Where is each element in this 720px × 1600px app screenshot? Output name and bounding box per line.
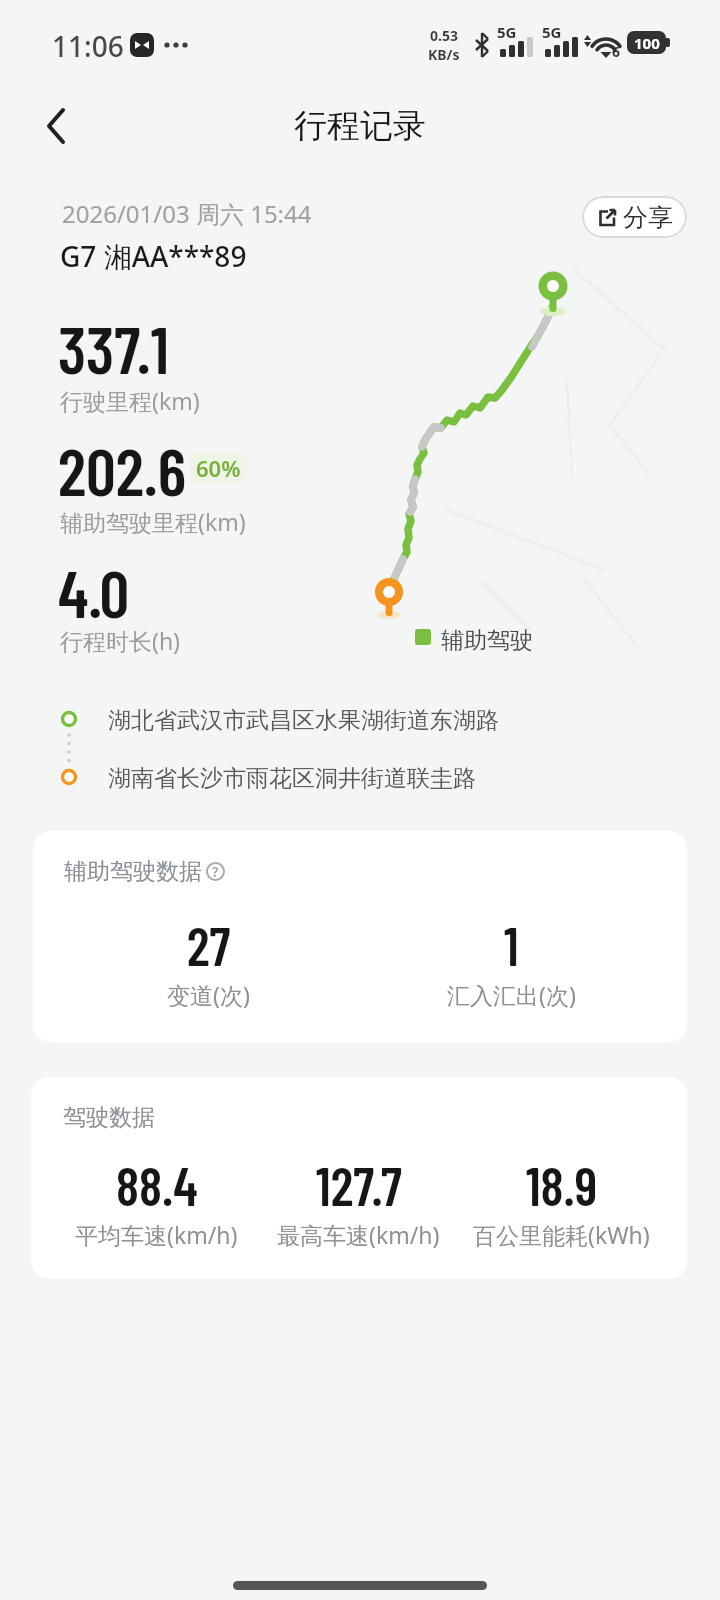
staticText: 行程时长(h) (60, 625, 181, 656)
staticText: 最高车速(km/h) (277, 1219, 440, 1250)
staticText: 辅助驾驶里程(km) (60, 506, 246, 537)
staticText: 行驶里程(km) (60, 385, 200, 416)
staticText: 6 (612, 42, 621, 61)
staticText: 60% (196, 453, 241, 483)
staticText: 百公里能耗(kWh) (473, 1219, 650, 1250)
staticText: 4.0 (58, 552, 130, 631)
staticText: 平均车速(km/h) (75, 1219, 238, 1250)
staticText: 127.7 (316, 1153, 402, 1217)
staticText: 2026/01/03 周六 15:44 (62, 197, 312, 230)
staticText: 88.4 (116, 1153, 198, 1217)
staticText: 变道(次) (167, 979, 250, 1010)
staticText: 5G (497, 22, 517, 42)
staticText: 18.9 (526, 1153, 598, 1217)
button[interactable]: 分享 (582, 196, 687, 238)
staticText: 0.53 (430, 26, 458, 45)
staticText: 337.1 (58, 308, 169, 387)
staticText: ? (212, 862, 219, 881)
button[interactable] (38, 106, 78, 146)
staticText: 11:06 (52, 27, 124, 65)
staticText: KB/s (428, 45, 460, 64)
staticText: 汇入汇出(次) (447, 979, 576, 1010)
staticText: 辅助驾驶 (441, 626, 533, 655)
staticText: 100 (634, 33, 660, 53)
staticText: 驾驶数据 (63, 1103, 155, 1132)
staticText: 1 (504, 913, 519, 977)
staticText: 行程记录 (294, 105, 426, 147)
staticText: 辅助驾驶数据 (64, 857, 202, 886)
staticText: 27 (187, 913, 231, 977)
staticText: 分享 (623, 202, 673, 233)
staticText: 湖南省长沙市雨花区洞井街道联圭路 (108, 764, 476, 793)
staticText: G7 湘AA***89 (60, 237, 247, 275)
staticText: 湖北省武汉市武昌区水果湖街道东湖路 (108, 706, 499, 735)
staticText: 5G (542, 22, 562, 42)
staticText: 202.6 (58, 430, 187, 509)
